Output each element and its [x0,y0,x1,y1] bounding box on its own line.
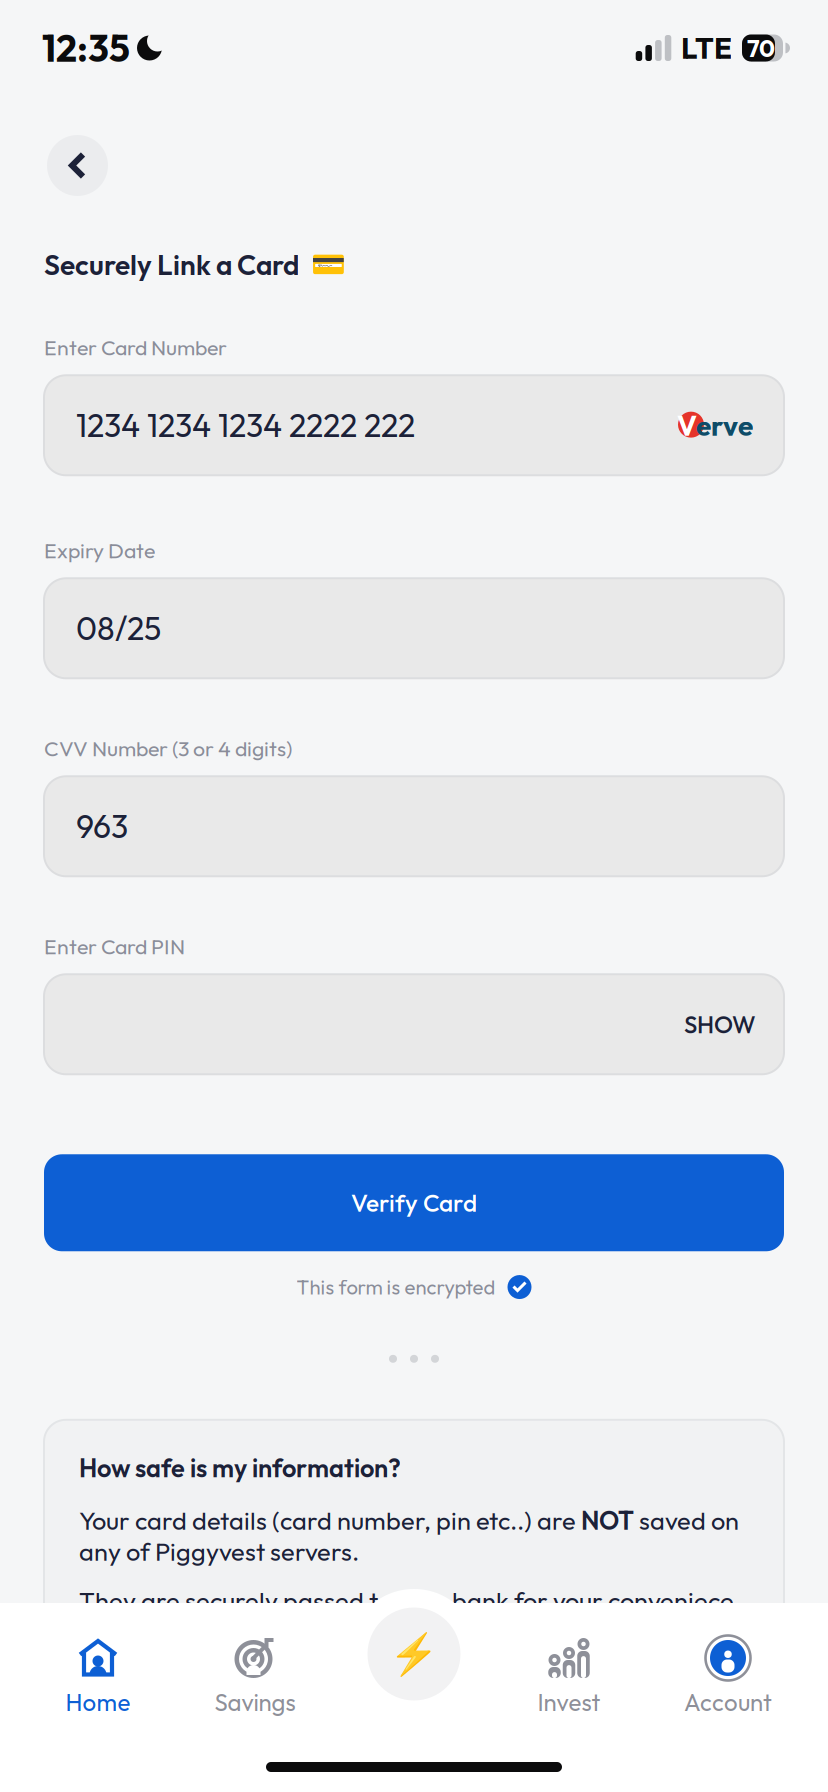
staticText: 💳 [311,248,346,281]
staticText: Account [684,1687,772,1717]
button[interactable]: Invest [510,1603,628,1792]
button[interactable]: 08/25 [44,578,784,678]
staticText: Verify Card [351,1187,477,1218]
staticText: LTE [681,29,732,66]
staticText: 08/25 [76,608,161,648]
staticText: Your card details (card number, pin etc.… [79,1505,739,1567]
button[interactable]: Verify Card [44,1154,784,1251]
staticText: Enter Card Number [44,334,227,361]
button[interactable]: Account [628,1603,828,1792]
staticText: 12:35 [42,24,130,71]
button[interactable]: 963 [44,776,784,876]
staticText: This form is encrypted [296,1274,495,1300]
staticText: How safe is my information? [79,1452,401,1484]
staticText: CVV Number (3 or 4 digits) [44,735,292,762]
staticText: Securely Link a Card [44,247,299,282]
staticText: Home [65,1687,130,1717]
button[interactable]: Quick actions [349,1589,479,1719]
button[interactable]: Home [0,1603,196,1792]
staticText: Invest [537,1687,600,1717]
staticText: They are securely passed to your bank fo… [79,1585,734,1647]
staticText: Enter Card PIN [44,933,185,960]
staticText: V [677,408,697,443]
staticText: SHOW [684,1009,756,1039]
staticText: erve [696,408,753,443]
button[interactable] [44,974,784,1074]
staticText: Savings [214,1687,295,1717]
button[interactable]: Savings [196,1603,314,1792]
staticText: ⚡ [389,1631,439,1677]
button[interactable]: 1234 1234 1234 2222 222 [44,375,784,475]
staticText: 1234 1234 1234 2222 222 [76,405,415,445]
staticText: 70 [747,33,775,63]
button[interactable]: Back [47,135,108,196]
staticText: Expiry Date [44,537,155,564]
staticText: 963 [76,806,128,846]
